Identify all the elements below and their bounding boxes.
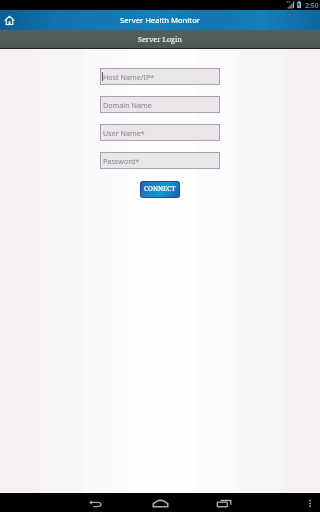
- button[interactable]: CONNECT: [140, 181, 180, 198]
- button[interactable]: Password*: [100, 152, 220, 169]
- button[interactable]: Home: [141, 493, 179, 512]
- staticText: User Name*: [103, 128, 145, 138]
- staticText: Server Login: [138, 34, 182, 44]
- staticText: CONNECT: [144, 184, 176, 193]
- staticText: Server Health Monitor: [120, 15, 200, 25]
- button[interactable]: Domain Name: [100, 96, 220, 113]
- button[interactable]: Host Name/IP*: [100, 68, 220, 85]
- button[interactable]: More options: [299, 493, 319, 512]
- button[interactable]: Recent apps: [205, 493, 243, 512]
- staticText: Domain Name: [103, 100, 152, 110]
- staticText: Password*: [103, 156, 140, 166]
- button[interactable]: Home: [2, 12, 19, 29]
- button[interactable]: Back: [76, 493, 114, 512]
- staticText: 2:50: [305, 1, 319, 10]
- button[interactable]: User Name*: [100, 124, 220, 141]
- staticText: Host Name/IP*: [103, 72, 155, 82]
